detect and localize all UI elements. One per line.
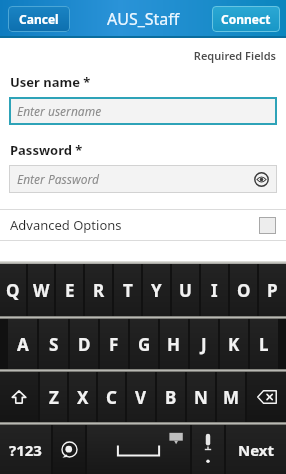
button[interactable]: X [69,372,96,422]
staticText: User name * [10,73,91,91]
button[interactable]: A [8,319,37,369]
button[interactable]: F [100,319,128,369]
button[interactable]: Z [40,372,67,422]
staticText: Y [151,279,162,302]
button[interactable]: Q [0,264,26,316]
staticText: Cancel [19,11,59,27]
staticText: J [201,333,207,356]
staticText: Q [6,279,20,302]
button[interactable]: U [172,264,199,316]
staticText: R [93,279,105,302]
button[interactable]: Cancel [8,6,70,32]
button[interactable]: B [157,372,185,422]
button[interactable]: ?123 [0,425,51,474]
staticText: L [259,333,269,356]
button[interactable]: Space [87,425,190,474]
button[interactable]: V [127,372,155,422]
button[interactable]: Change language [53,425,85,474]
button[interactable]: S [39,319,68,369]
staticText: S [49,333,59,356]
staticText: T [123,279,133,302]
staticText: I [211,279,218,302]
button[interactable]: Advanced Options [0,210,286,240]
button[interactable]: M [217,372,245,422]
button[interactable]: Y [143,264,170,316]
button[interactable]: N [187,372,215,422]
staticText: C [106,386,117,409]
button[interactable]: T [114,264,141,316]
button[interactable]: I [201,264,228,316]
staticText: W [33,279,50,302]
button[interactable]: P [259,264,286,316]
staticText: E [65,279,75,302]
button[interactable]: D [70,319,98,369]
staticText: H [167,333,181,356]
button[interactable]: Shift [0,372,38,422]
staticText: G [138,333,151,356]
button[interactable]: Next [226,425,286,474]
staticText: Enter username [17,103,102,119]
staticText: O [237,279,251,302]
button[interactable]: Show password [249,167,273,191]
staticText: V [135,386,147,409]
staticText: D [78,333,91,356]
button[interactable]: W [28,264,54,316]
button[interactable]: R [85,264,112,316]
staticText: U [179,279,192,302]
button[interactable]: E [56,264,83,316]
staticText: K [228,333,240,356]
staticText: B [165,386,177,409]
button[interactable]: Enter Password [9,165,277,193]
staticText: F [109,333,119,356]
staticText: A [17,333,29,356]
button[interactable]: Backspace [247,372,286,422]
staticText: X [77,386,89,409]
button[interactable]: Period and voice input [192,425,224,474]
staticText: Advanced Options [10,216,122,234]
staticText: Connect [221,11,271,27]
staticText: Required Fields [0,48,276,63]
button[interactable]: L [250,319,278,369]
button[interactable]: H [160,319,188,369]
staticText: Z [49,386,59,409]
button[interactable]: O [230,264,257,316]
button[interactable]: C [98,372,125,422]
button[interactable]: K [220,319,248,369]
staticText: Password * [10,141,83,159]
staticText: P [267,279,278,302]
staticText: AUS_Staff [107,8,180,30]
staticText: Next [238,440,275,460]
button[interactable]: J [190,319,218,369]
button[interactable]: Enter username [9,97,277,125]
button[interactable]: G [130,319,158,369]
button[interactable]: Connect [212,6,280,32]
staticText: N [194,386,208,409]
staticText: ?123 [9,440,42,460]
staticText: M [223,386,240,409]
staticText: Enter Password [17,171,99,187]
